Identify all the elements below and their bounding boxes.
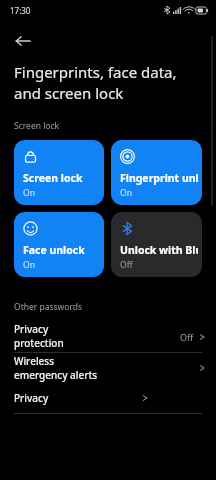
staticText: Wireless emergency alerts xyxy=(14,354,106,382)
staticText: 17:30 xyxy=(10,5,31,16)
staticText: Face unlock xyxy=(23,243,85,257)
button[interactable]: Privacy xyxy=(0,383,216,413)
staticText: Unlock with Bluetooth xyxy=(120,243,198,257)
staticText: On xyxy=(23,259,35,271)
button[interactable]: Face unlock xyxy=(14,212,104,277)
button[interactable]: Wireless emergency alerts xyxy=(0,353,216,383)
staticText: Privacy xyxy=(14,391,49,405)
staticText: Other passwords xyxy=(14,301,83,313)
button[interactable]: Privacy protection password xyxy=(0,322,216,352)
staticText: Fingerprint unlock xyxy=(120,171,198,185)
staticText: Screen lock xyxy=(14,120,60,132)
staticText: On xyxy=(23,187,35,199)
button[interactable]: Fingerprint unlock xyxy=(111,140,202,205)
button[interactable]: Screen lock xyxy=(14,140,104,205)
button[interactable]: Unlock with Bluetooth xyxy=(111,212,202,277)
staticText: Privacy protection password xyxy=(14,322,97,352)
staticText: Screen lock xyxy=(23,171,83,185)
staticText: Off xyxy=(180,331,194,343)
staticText: Off xyxy=(120,259,133,271)
staticText: Fingerprints, face data, and screen lock xyxy=(14,62,177,104)
button[interactable]: Back xyxy=(8,26,38,56)
staticText: On xyxy=(120,187,132,199)
